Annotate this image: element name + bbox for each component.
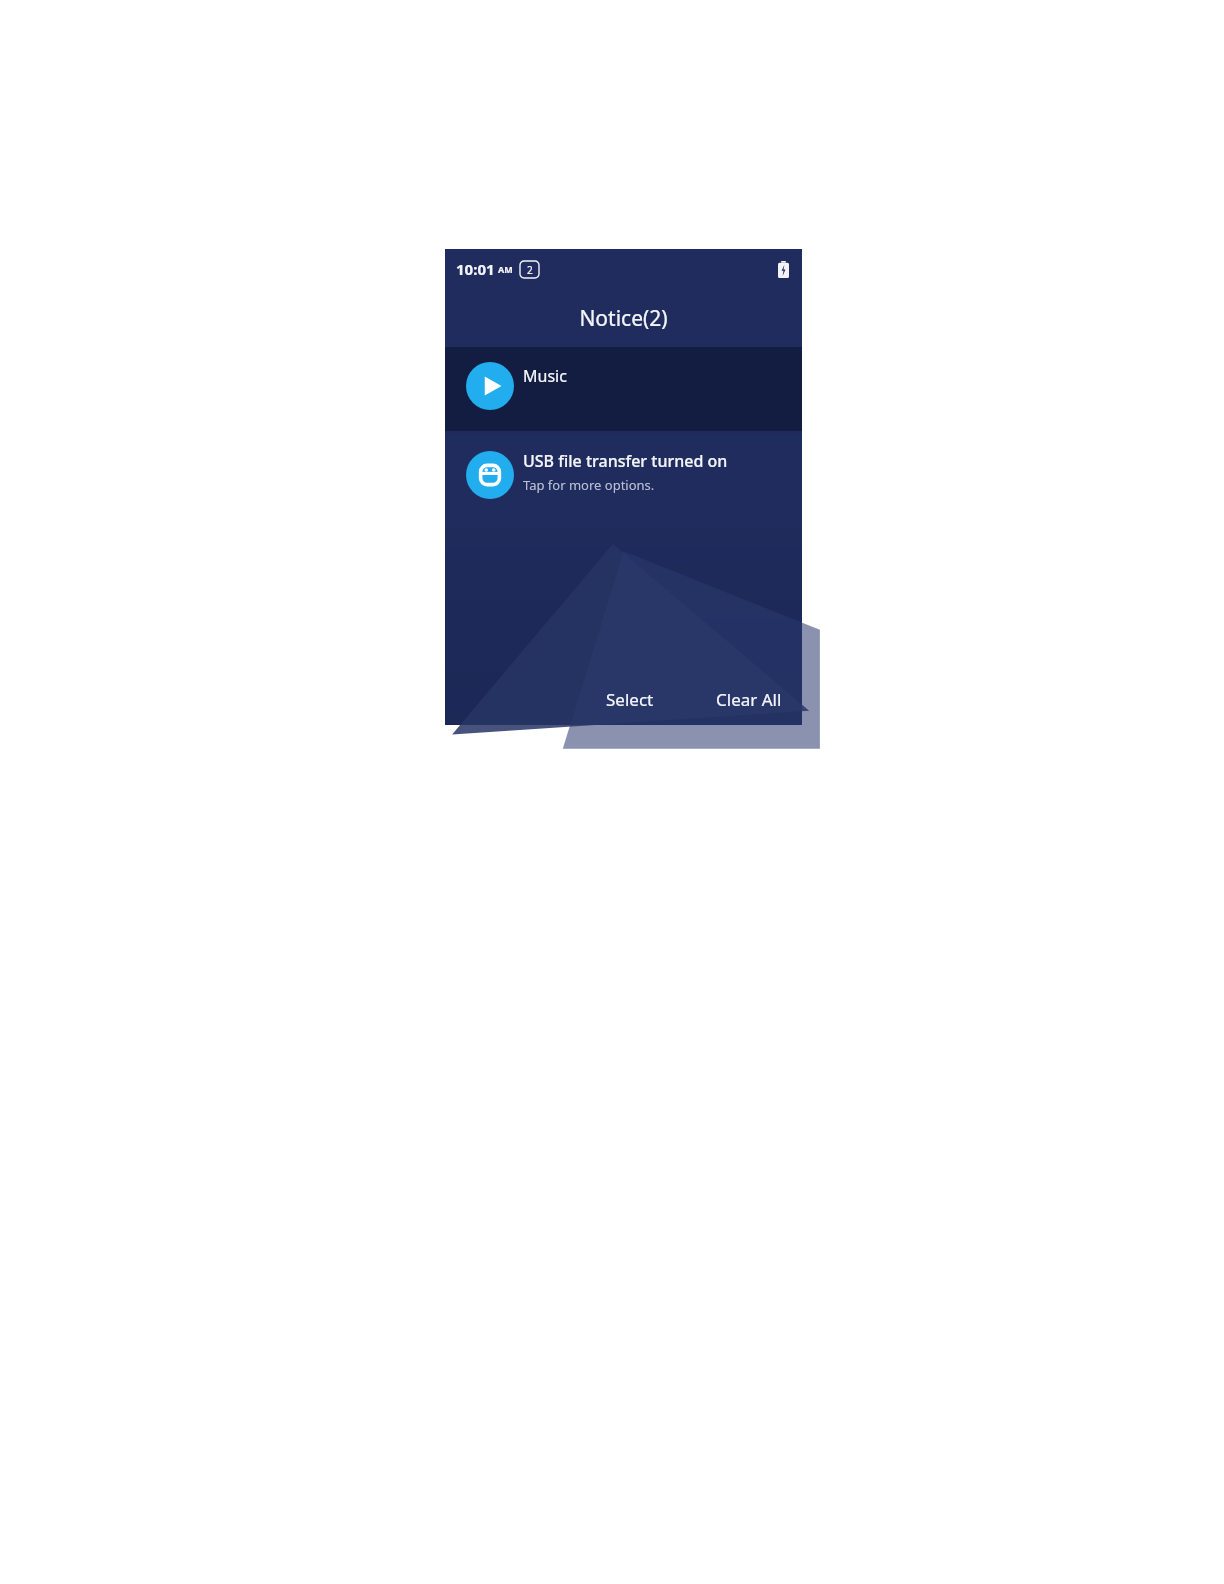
staticText: 10:01 (456, 259, 495, 279)
button[interactable]: Music playback (445, 347, 802, 431)
button[interactable]: Clear All (704, 682, 794, 717)
staticText: AM (498, 263, 513, 275)
other: USB file transfer (466, 451, 514, 499)
staticText: Clear All (716, 688, 782, 711)
staticText: USB file transfer turned on (523, 450, 728, 472)
button[interactable]: Select (594, 682, 666, 717)
staticText: Select (606, 688, 654, 711)
staticText: 2 (527, 263, 533, 277)
other: Music playback (466, 362, 514, 410)
staticText: Music (523, 365, 567, 387)
staticText: Notice(2) (579, 304, 668, 333)
staticText: Tap for more options. (523, 476, 655, 494)
button[interactable]: USB file transfer (445, 437, 802, 527)
